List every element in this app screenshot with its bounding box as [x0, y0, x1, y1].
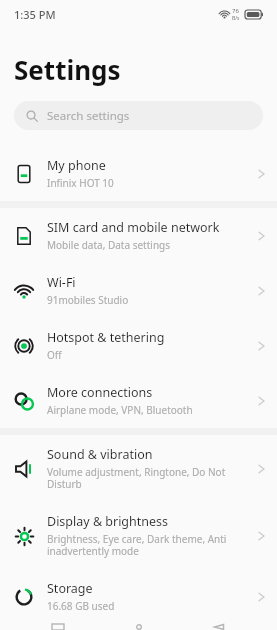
staticText: 91mobiles Studio	[47, 293, 129, 307]
button[interactable]: Sound & vibration	[0, 435, 277, 502]
staticText: More connections	[47, 384, 153, 401]
staticText: SIM card and mobile network	[47, 219, 220, 236]
staticText: 16.68 GB used	[47, 599, 115, 613]
button[interactable]: Recent apps	[36, 624, 80, 630]
staticText: Airplane mode, VPN, Bluetooth	[47, 403, 193, 417]
staticText: My phone	[47, 157, 106, 174]
button[interactable]: Hotspot & tethering	[0, 318, 277, 373]
staticText: Mobile data, Data settings	[47, 238, 171, 252]
button[interactable]: Back	[197, 624, 241, 630]
staticText: Sound & vibration	[47, 446, 153, 463]
button[interactable]: Search settings	[14, 101, 263, 130]
button[interactable]: Home	[117, 624, 161, 630]
button[interactable]: More connections	[0, 373, 277, 428]
staticText: Hotspot & tethering	[47, 329, 165, 346]
staticText: B/s	[232, 15, 240, 22]
staticText: Infinix HOT 10	[47, 176, 114, 190]
button[interactable]: Storage	[0, 569, 277, 624]
staticText: Off	[47, 348, 62, 362]
staticText: Brightness, Eye care, Dark theme, Anti i…	[47, 532, 252, 558]
staticText: Display & brightness	[47, 513, 169, 530]
staticText: Settings	[14, 52, 121, 87]
staticText: Wi-Fi	[47, 274, 76, 291]
staticText: Storage	[47, 580, 93, 597]
staticText: 1:35 PM	[14, 7, 56, 22]
staticText: Search settings	[47, 108, 130, 124]
button[interactable]: SIM card and mobile network	[0, 208, 277, 263]
button[interactable]: My phone	[0, 146, 277, 201]
button[interactable]: Display & brightness	[0, 502, 277, 569]
button[interactable]: Wi-Fi	[0, 263, 277, 318]
staticText: Volume adjustment, Ringtone, Do Not Dist…	[47, 465, 252, 491]
staticText: 76	[232, 7, 239, 15]
